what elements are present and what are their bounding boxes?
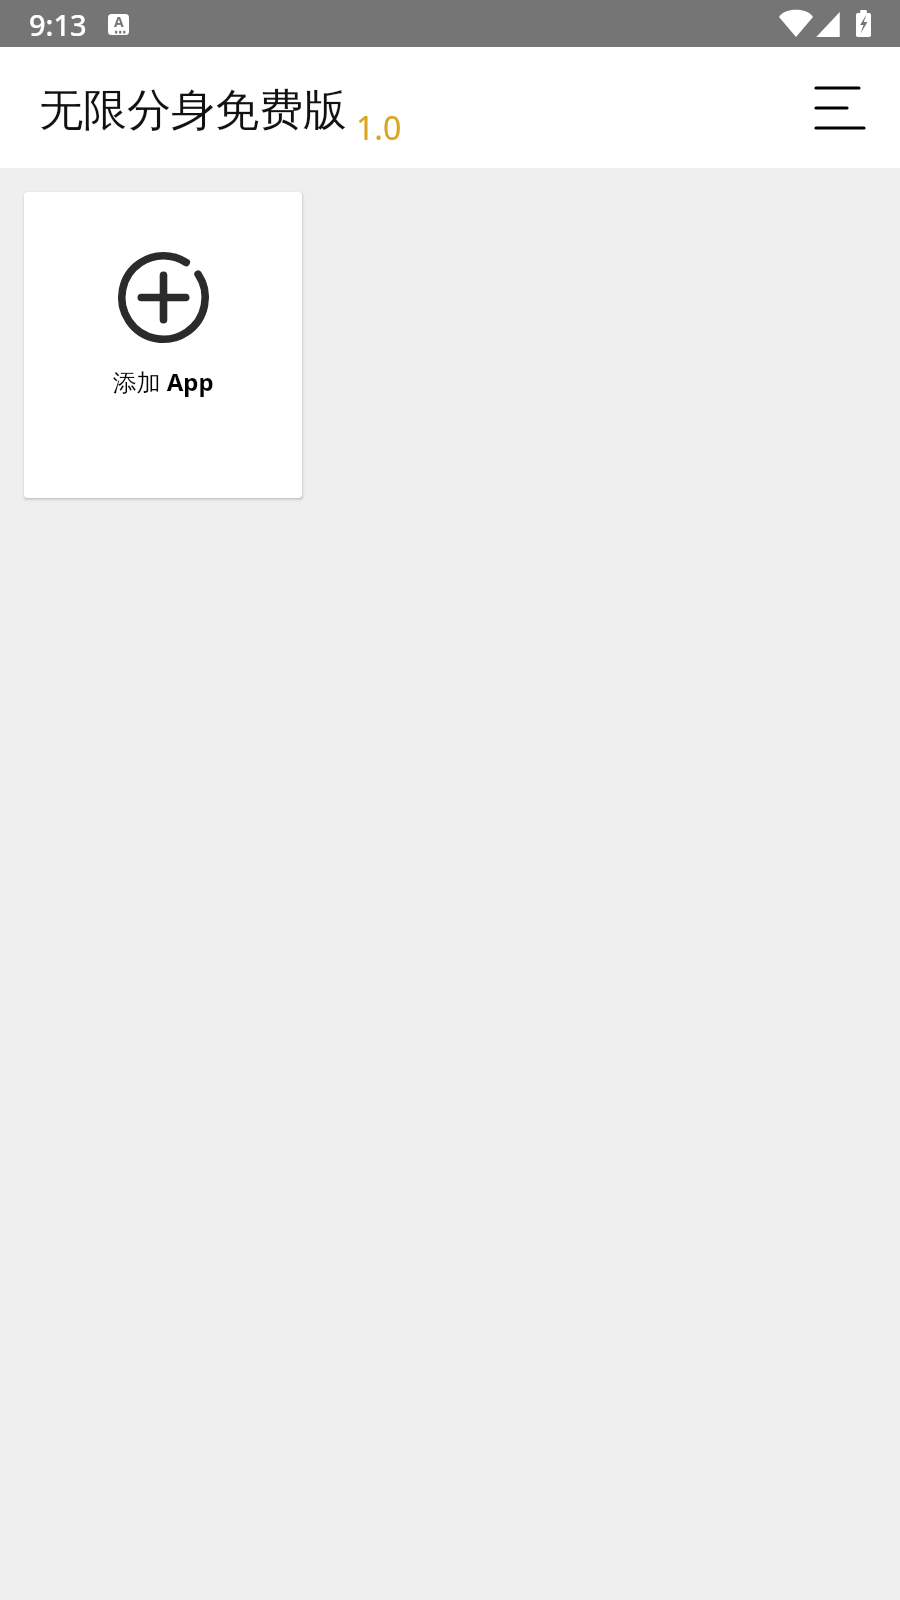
staticText: 无限分身免费版 — [39, 83, 347, 138]
staticText: A — [114, 12, 124, 31]
staticText: 1.0 — [356, 106, 402, 150]
staticText: 添加 App — [112, 365, 214, 398]
button[interactable]: 添加 App — [24, 192, 302, 498]
staticText: 9:13 — [29, 5, 87, 44]
button[interactable]: Menu — [798, 65, 884, 151]
